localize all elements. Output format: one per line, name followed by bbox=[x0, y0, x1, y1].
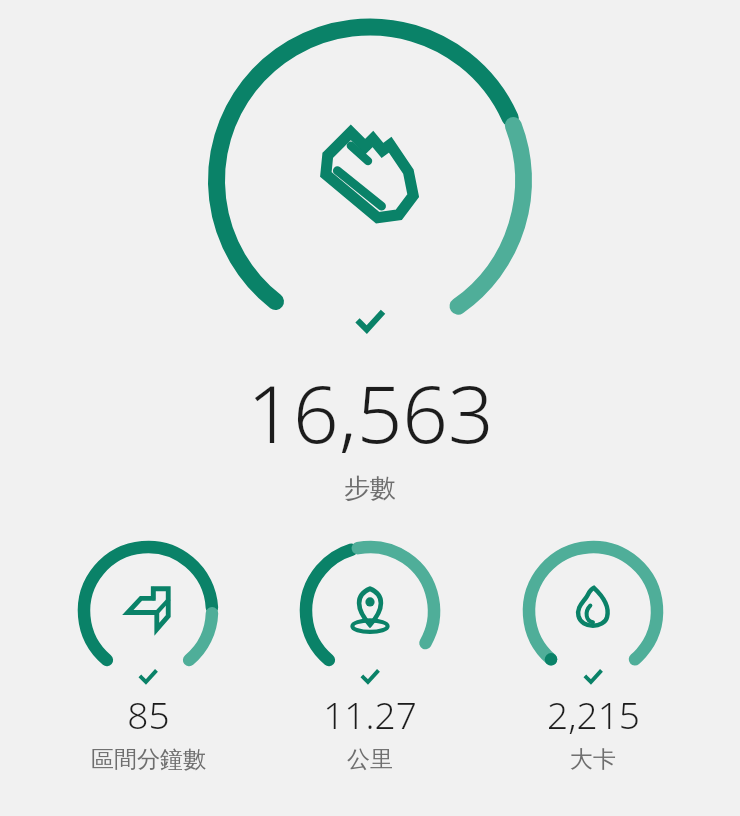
staticText: 11.27 bbox=[323, 689, 417, 739]
staticText: 步數 bbox=[344, 472, 396, 505]
staticText: 2,215 bbox=[547, 689, 640, 739]
staticText: 區間分鐘數 bbox=[91, 745, 206, 774]
button[interactable]: Steps progress ring bbox=[194, 11, 546, 351]
button[interactable]: 11.27 bbox=[295, 539, 445, 774]
button[interactable]: 85 bbox=[73, 539, 223, 774]
staticText: 16,563 bbox=[247, 357, 494, 466]
staticText: 大卡 bbox=[570, 745, 616, 774]
button[interactable]: 2,215 bbox=[518, 539, 668, 774]
staticText: 公里 bbox=[347, 745, 393, 774]
staticText: 85 bbox=[127, 689, 170, 739]
